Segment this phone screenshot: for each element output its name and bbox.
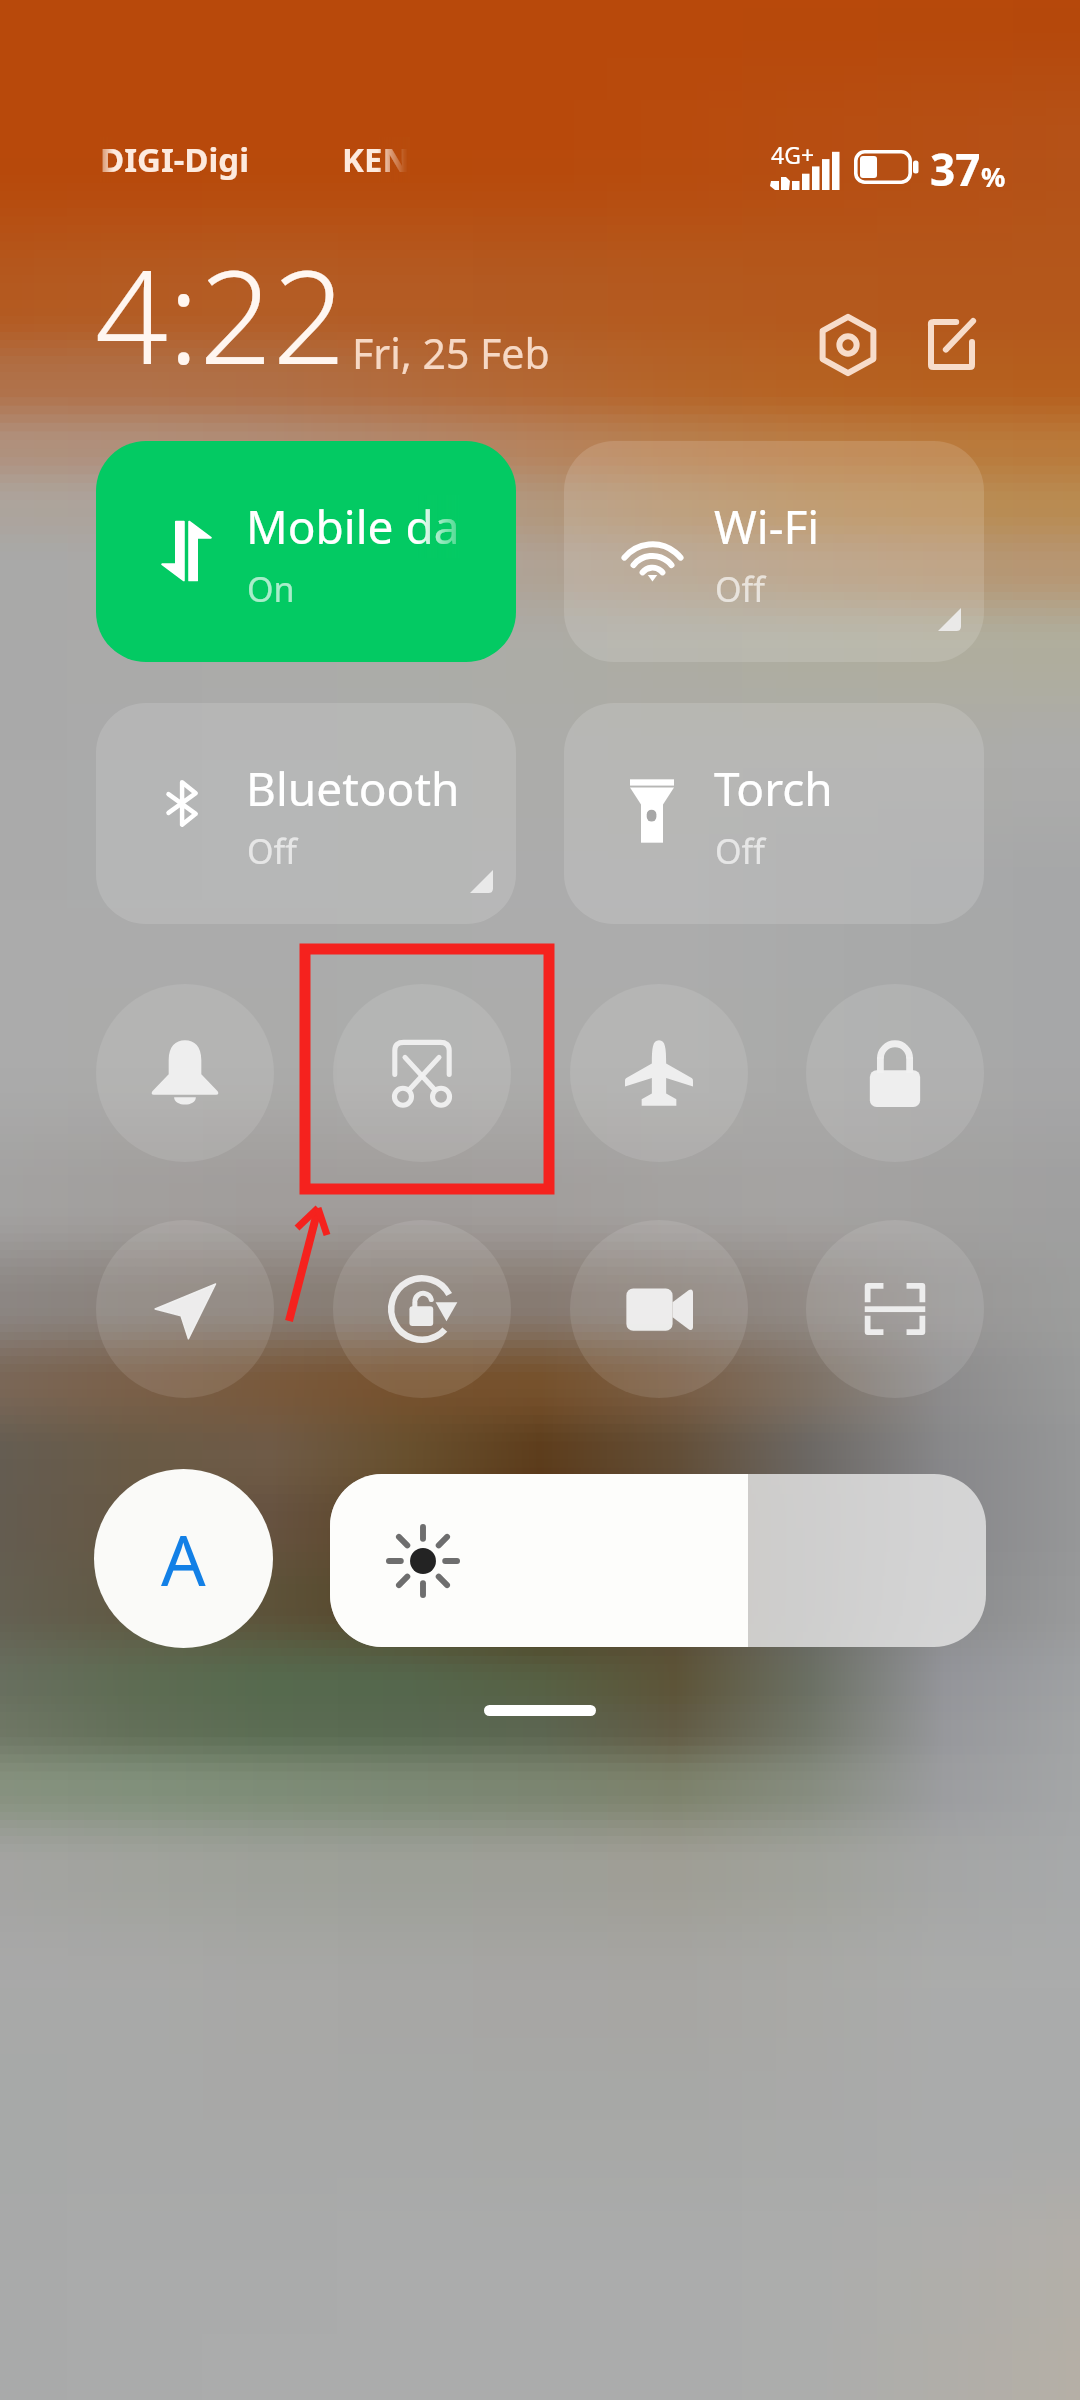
staticText: DIGI-Digi <box>100 137 250 182</box>
button[interactable]: Auto rotate <box>333 1220 511 1398</box>
staticText: % <box>981 158 1006 195</box>
staticText: Bluetooth <box>246 757 460 820</box>
staticText: Off <box>247 828 297 874</box>
button[interactable]: Automatic brightness <box>94 1469 273 1648</box>
staticText: Mobile da <box>246 495 460 558</box>
staticText: Off <box>715 566 765 612</box>
staticText: A <box>161 1511 206 1606</box>
staticText: Off <box>715 828 765 874</box>
button[interactable]: Screen recorder <box>570 1220 748 1398</box>
staticText: 4G+ <box>771 139 815 170</box>
staticText: Fri, 25 Feb <box>352 325 550 381</box>
button[interactable]: Edit <box>906 299 996 389</box>
button[interactable]: Location <box>96 1220 274 1398</box>
button[interactable]: Silent <box>96 984 274 1162</box>
staticText: Torch <box>714 757 833 820</box>
staticText: 37 <box>930 139 981 199</box>
staticText: KEN <box>342 137 410 182</box>
button[interactable]: Mobile da <box>96 441 516 662</box>
staticText: Wi-Fi <box>714 495 820 558</box>
button[interactable]: Screen lock <box>806 984 984 1162</box>
button[interactable]: Scan <box>806 1220 984 1398</box>
button[interactable]: Torch <box>564 703 984 924</box>
button[interactable]: Airplane mode <box>570 984 748 1162</box>
button[interactable]: Settings <box>803 300 893 390</box>
button[interactable]: Brightness <box>330 1474 986 1647</box>
button[interactable]: Bluetooth <box>96 703 516 924</box>
button[interactable]: Screen cast <box>333 984 511 1162</box>
staticText: On <box>247 566 295 612</box>
button[interactable]: Wi-Fi <box>564 441 984 662</box>
staticText: 4:22 <box>95 227 346 401</box>
